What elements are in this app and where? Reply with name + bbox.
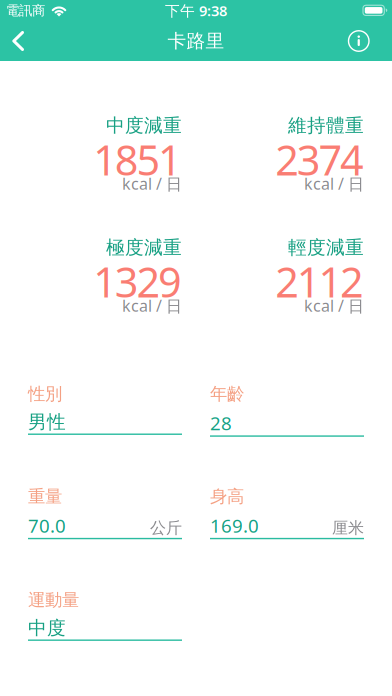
staticText: 中度減重 [106,114,182,137]
staticText: kcal / 日 [122,173,182,194]
staticText: kcal / 日 [122,295,182,316]
staticText: 電訊商 [6,2,45,19]
button[interactable]: 年齡 [210,383,364,437]
staticText: kcal / 日 [304,295,364,316]
staticText: 1851 [93,132,182,187]
button[interactable]: 重量 [28,486,182,539]
staticText: 維持體重 [288,114,364,137]
staticText: 公斤 [150,518,182,538]
button[interactable]: 身高 [210,486,364,539]
staticText: 性別 [28,383,62,405]
button[interactable]: Back [0,21,40,61]
button[interactable]: 性別 [28,383,182,435]
staticText: 男性 [28,411,66,433]
staticText: 運動量 [28,589,79,611]
staticText: 2112 [275,254,364,309]
staticText: 70.0 [28,513,66,538]
staticText: 下午 9:38 [165,1,227,20]
staticText: 中度 [28,616,66,639]
staticText: 厘米 [332,518,364,538]
button[interactable]: Info [348,21,392,61]
staticText: 卡路里 [167,29,224,52]
staticText: 重量 [28,486,62,507]
staticText: 極度減重 [106,236,182,259]
staticText: 年齡 [210,383,244,405]
staticText: 2374 [275,132,364,187]
staticText: kcal / 日 [304,173,364,194]
staticText: 1329 [93,254,182,309]
staticText: 28 [210,411,232,435]
staticText: 169.0 [210,513,259,538]
staticText: 身高 [210,486,244,507]
button[interactable]: 運動量 [28,589,182,641]
staticText: 輕度減重 [288,236,364,259]
